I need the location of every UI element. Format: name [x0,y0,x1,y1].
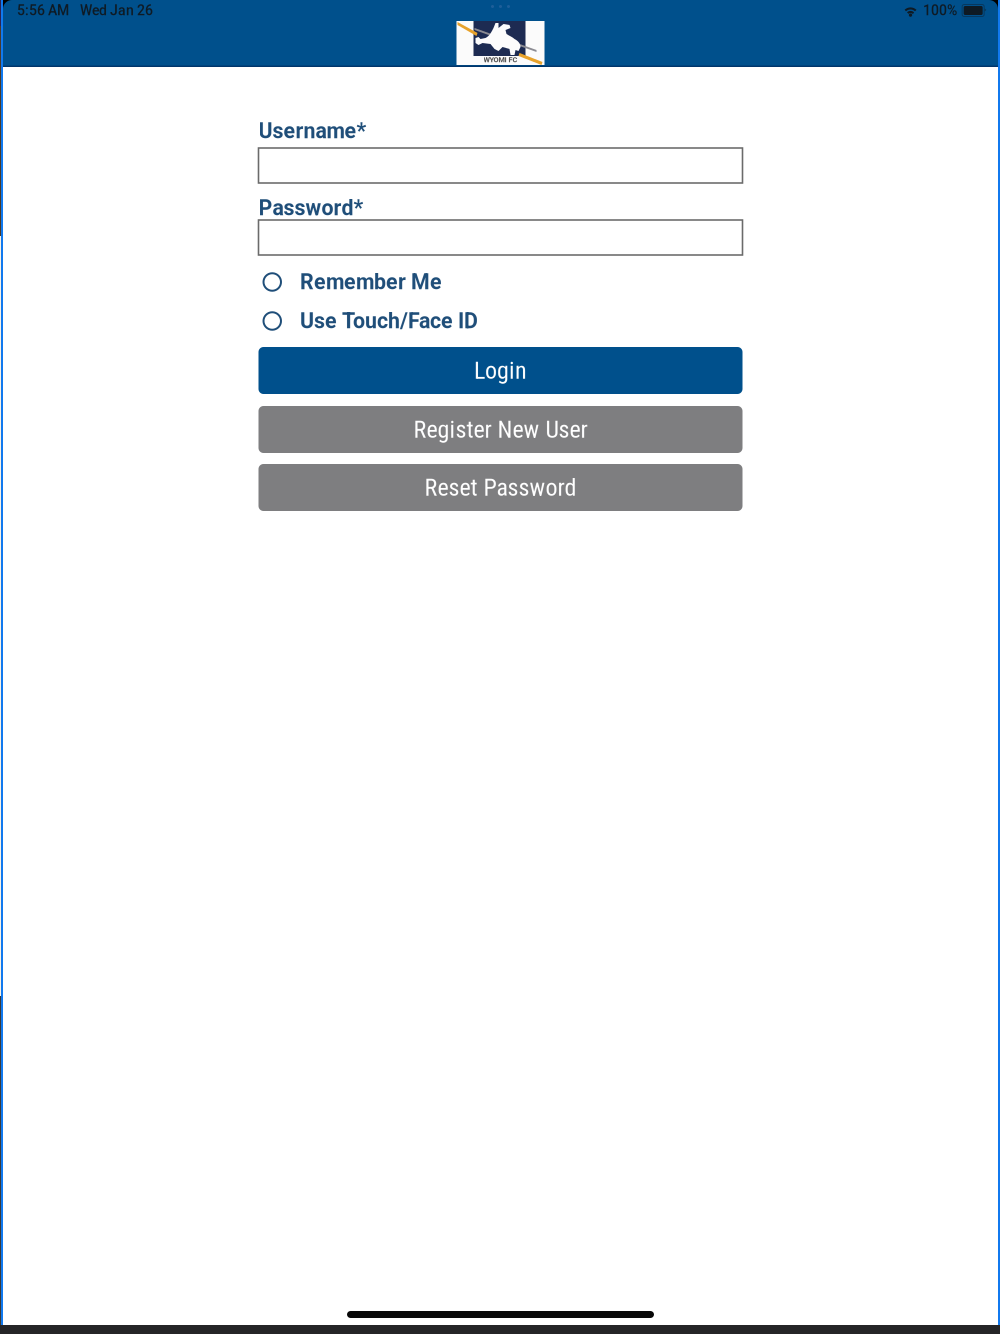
staticText: Register New User [413,415,587,443]
button[interactable]: Use Touch/Face ID [258,306,742,336]
button[interactable]: Remember Me [258,267,742,297]
staticText: Remember Me [300,269,442,294]
staticText: Username* [258,118,366,143]
staticText: 100% [923,2,957,19]
staticText: Reset Password [424,473,576,501]
staticText: Password* [258,195,363,220]
button[interactable]: Username [258,148,742,183]
staticText: Wed Jan 26 [80,2,153,19]
button[interactable]: Register New User [258,406,742,453]
staticText: Login [474,356,527,384]
staticText: Use Touch/Face ID [300,308,478,333]
button[interactable]: Reset Password [258,464,742,511]
staticText: WYOMI FC [483,55,517,64]
button[interactable]: Login [258,347,742,394]
staticText: 5:56 AM [17,2,69,19]
button[interactable]: Password [258,220,742,255]
